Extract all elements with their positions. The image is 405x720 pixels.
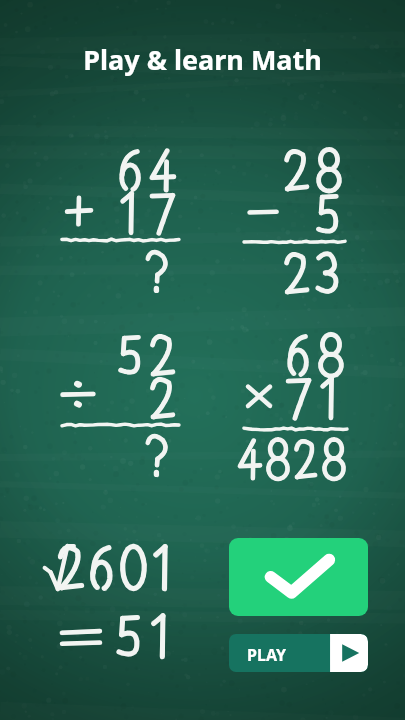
button[interactable]: Confirm answer — [229, 538, 368, 616]
staticText: Play & learn Math — [83, 41, 322, 78]
staticText: PLAY — [247, 644, 287, 666]
button[interactable]: PLAY — [229, 634, 368, 672]
